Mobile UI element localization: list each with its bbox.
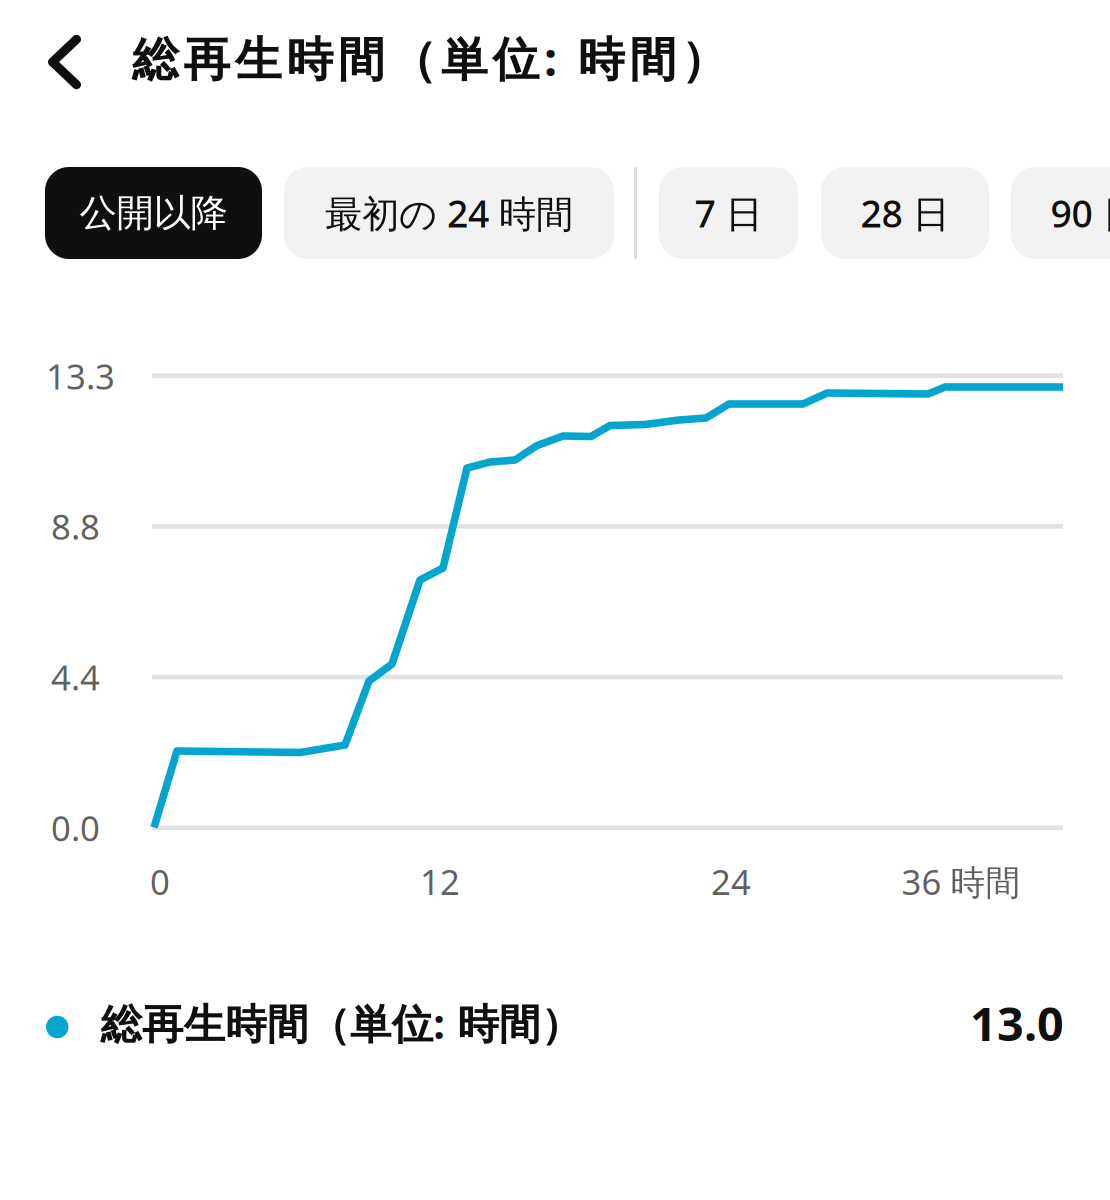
button[interactable]: 7 日 [659, 167, 798, 259]
staticText: 4.4 [51, 654, 100, 700]
button[interactable]: 最初の 24 時間 [284, 167, 614, 259]
staticText: 0.0 [51, 805, 100, 851]
staticText: 12 [420, 858, 460, 904]
button[interactable]: 28 日 [821, 167, 989, 259]
staticText: 0 [150, 858, 170, 904]
staticText: 24 [711, 858, 751, 904]
staticText: 13.3 [46, 353, 115, 399]
staticText: 90 日 [1050, 188, 1110, 238]
staticText: 28 日 [860, 188, 949, 238]
button[interactable]: 戻る [0, 0, 132, 116]
staticText: 最初の 24 時間 [325, 188, 573, 238]
staticText: 7 日 [694, 188, 762, 238]
staticText: 8.8 [51, 503, 100, 549]
button[interactable]: 公開以降 [45, 167, 262, 259]
staticText: 総再生時間（単位: 時間） [100, 996, 582, 1050]
staticText: 36 時間 [901, 858, 1020, 904]
staticText: 公開以降 [79, 190, 227, 236]
staticText: 総再生時間（単位: 時間） [132, 27, 728, 89]
staticText: 13.0 [970, 992, 1064, 1054]
button[interactable]: 90 日 [1011, 167, 1110, 259]
